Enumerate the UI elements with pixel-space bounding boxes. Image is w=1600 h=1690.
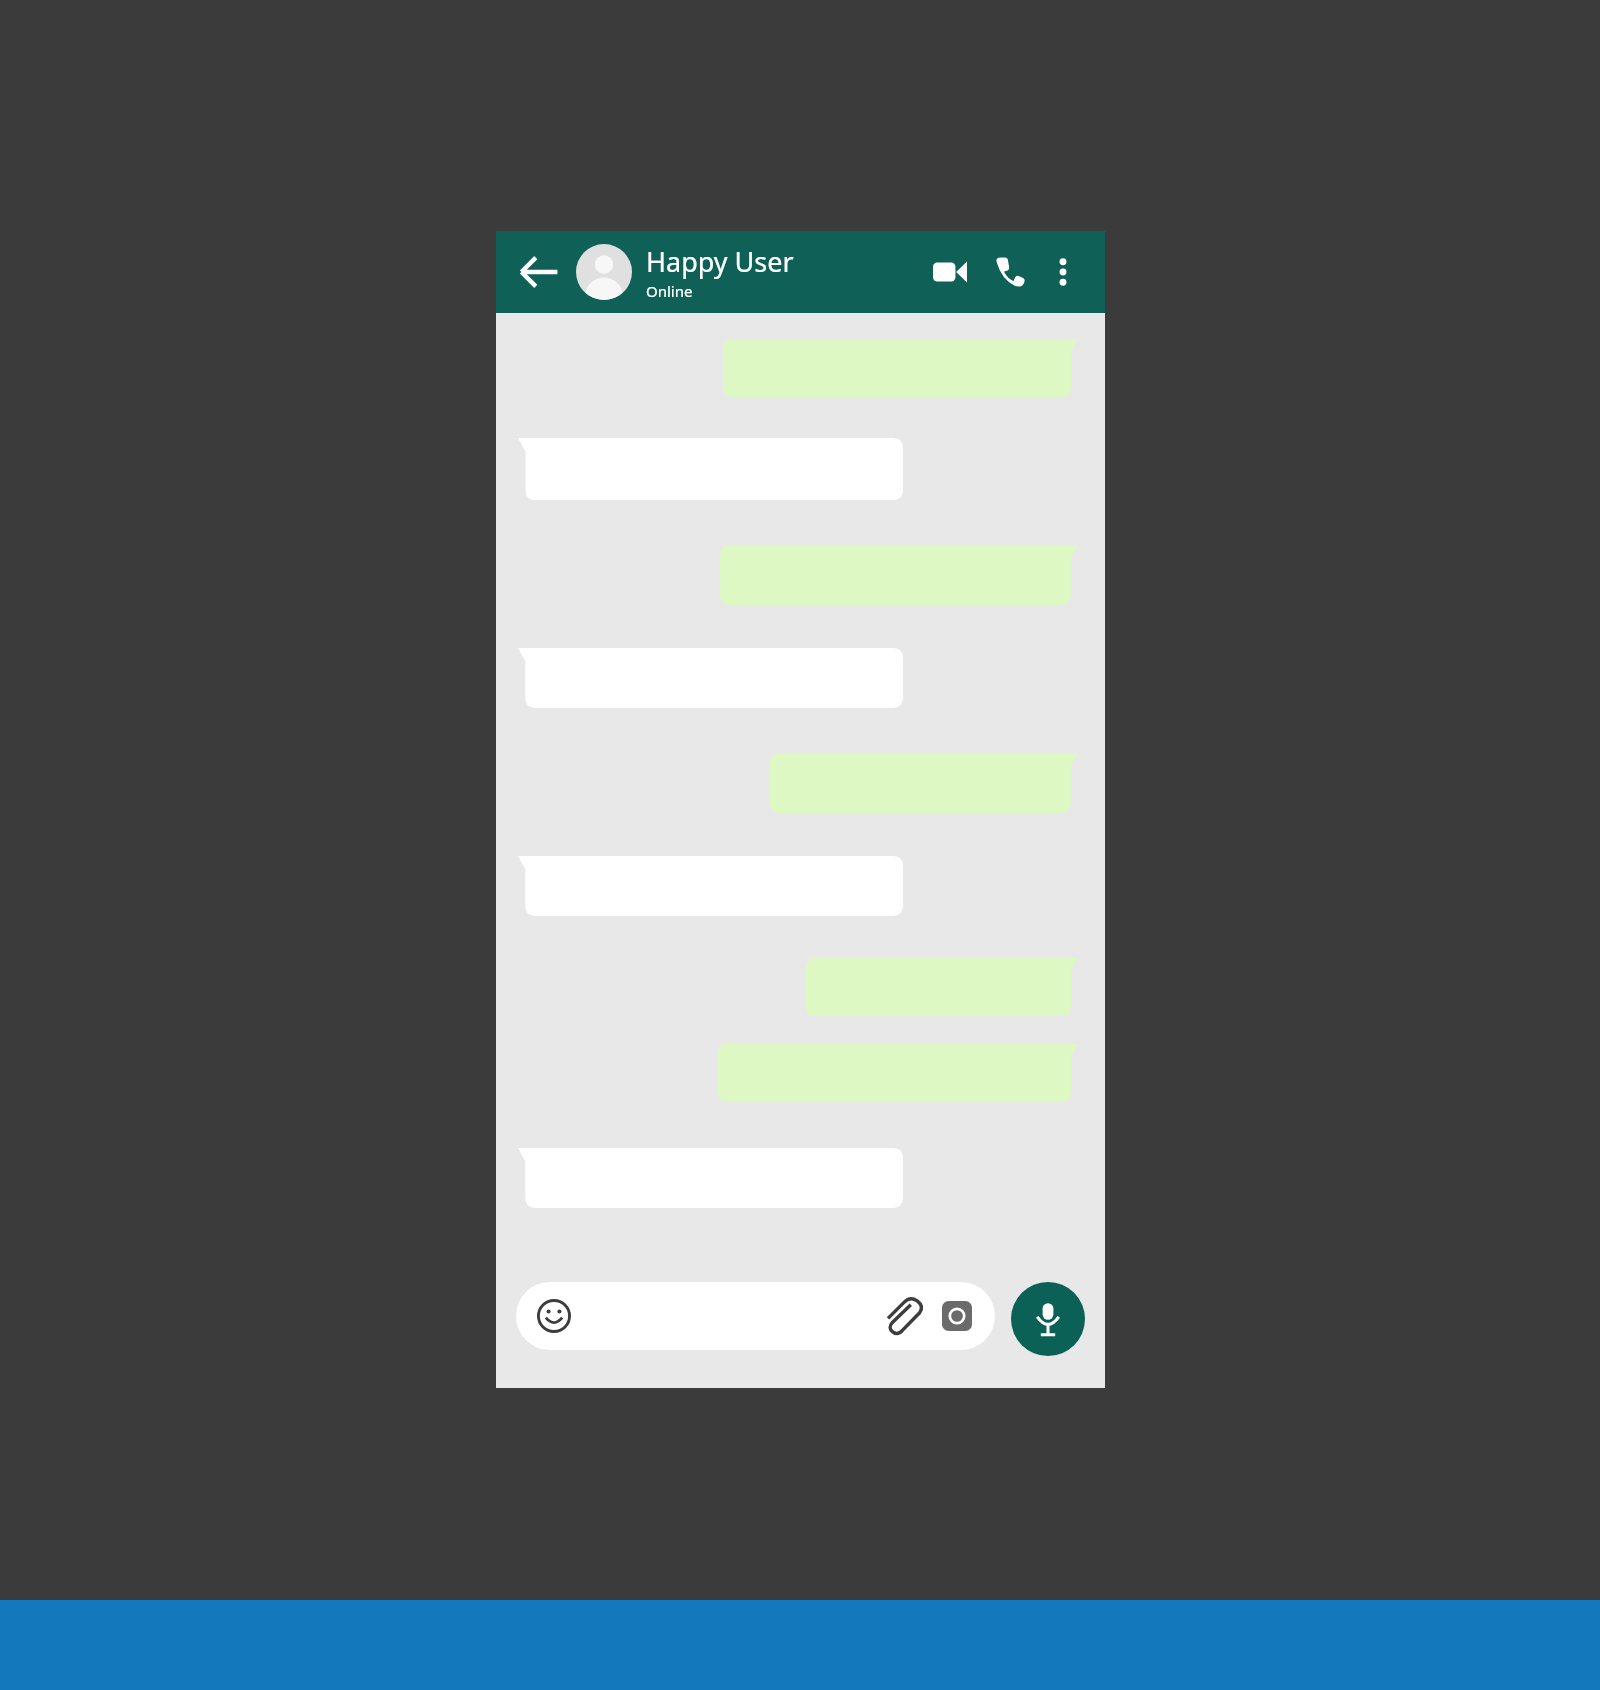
button[interactable] bbox=[770, 753, 1078, 813]
button[interactable]: More options bbox=[1041, 250, 1085, 294]
button[interactable]: Video call bbox=[925, 247, 975, 297]
button[interactable] bbox=[518, 438, 903, 500]
button[interactable]: Emoji bbox=[516, 1282, 995, 1350]
button[interactable]: Happy User bbox=[646, 243, 925, 301]
button[interactable] bbox=[518, 856, 903, 916]
staticText: Online bbox=[646, 281, 693, 301]
button[interactable]: Camera bbox=[937, 1296, 977, 1336]
button[interactable] bbox=[518, 1148, 903, 1208]
button[interactable] bbox=[518, 648, 903, 708]
staticText: Happy User bbox=[646, 243, 794, 280]
button[interactable] bbox=[720, 545, 1078, 605]
button[interactable]: Voice call bbox=[985, 247, 1035, 297]
button[interactable]: Back bbox=[516, 249, 562, 295]
button[interactable]: Attach bbox=[879, 1293, 925, 1339]
button[interactable]: Record voice message bbox=[1011, 1282, 1085, 1356]
button[interactable]: Emoji bbox=[534, 1296, 574, 1336]
button[interactable] bbox=[806, 958, 1078, 1016]
button[interactable] bbox=[718, 1044, 1078, 1102]
button[interactable]: Contact avatar bbox=[576, 244, 632, 300]
button[interactable] bbox=[723, 339, 1078, 397]
